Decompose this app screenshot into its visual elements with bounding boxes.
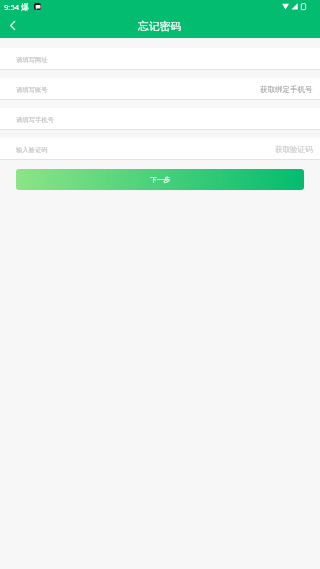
staticText: 下一步 [150, 175, 171, 184]
staticText: 忘记密码 [138, 20, 182, 34]
staticText: 获取绑定手机号 [260, 85, 313, 94]
button[interactable]: 请填写网址 [0, 48, 320, 69]
staticText: 请填写网址 [16, 56, 48, 64]
button[interactable]: 请填写手机号 [0, 108, 320, 129]
staticText: 输入验证码 [16, 146, 48, 154]
button[interactable]: 下一步 [16, 169, 304, 190]
staticText: 获取验证码 [275, 145, 313, 154]
staticText: 爆 [21, 2, 29, 12]
staticText: 请填写账号 [16, 86, 48, 94]
button[interactable]: Back [1, 14, 23, 36]
button[interactable]: 获取绑定手机号 [254, 78, 320, 99]
staticText: 9:54 [4, 2, 20, 12]
staticText: 请填写手机号 [16, 116, 54, 124]
button[interactable]: 输入验证码 [0, 138, 269, 159]
button[interactable]: 请填写账号 [0, 78, 254, 99]
button[interactable]: 获取验证码 [269, 138, 320, 159]
